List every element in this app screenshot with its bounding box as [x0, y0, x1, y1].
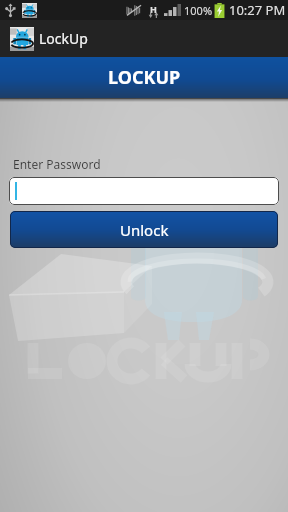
staticText: Unlock — [120, 220, 169, 240]
staticText: LockUp — [39, 29, 88, 48]
staticText: 10:27 PM — [229, 1, 286, 19]
staticText: Enter Password — [13, 156, 101, 172]
staticText: LOCKUP — [108, 65, 181, 90]
staticText: H — [150, 3, 157, 15]
staticText: 100% — [184, 3, 213, 18]
button[interactable]: Password entry field — [9, 177, 279, 205]
button[interactable]: Unlock — [10, 211, 278, 248]
